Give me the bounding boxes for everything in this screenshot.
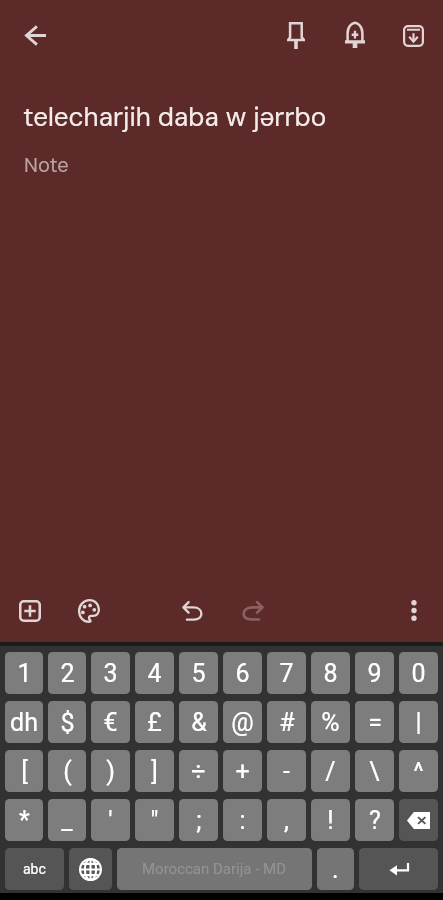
staticText: | — [415, 708, 422, 737]
button[interactable]: \ — [355, 750, 394, 792]
staticText: ' — [108, 806, 113, 835]
staticText: , — [284, 806, 289, 835]
staticText: 7 — [279, 659, 294, 688]
button[interactable]: Add — [7, 588, 53, 634]
button[interactable]: = — [355, 701, 394, 743]
staticText: ! — [327, 806, 334, 835]
staticText: ( — [63, 757, 72, 786]
staticText: ÷ — [191, 757, 206, 786]
staticText: * — [19, 806, 30, 835]
staticText: $ — [60, 708, 75, 737]
button[interactable]: ! — [311, 799, 350, 841]
staticText: 4 — [147, 659, 162, 688]
button[interactable]: Archive — [391, 13, 436, 59]
button[interactable]: £ — [135, 701, 174, 743]
button[interactable]: : — [223, 799, 262, 841]
staticText: 5 — [191, 659, 206, 688]
staticText: # — [279, 708, 295, 737]
button[interactable]: dh — [5, 701, 43, 743]
button[interactable]: 0 — [399, 652, 438, 694]
button[interactable]: Moroccan Darija - MD — [117, 848, 312, 890]
button[interactable]: + — [223, 750, 262, 792]
button[interactable]: ' — [91, 799, 130, 841]
button[interactable]: Enter — [359, 848, 438, 890]
button[interactable]: Reminder — [333, 10, 377, 60]
staticText: ] — [151, 757, 158, 786]
button[interactable]: @ — [223, 701, 262, 743]
button[interactable]: _ — [48, 799, 86, 841]
staticText: 1 — [17, 659, 32, 688]
staticText: _ — [61, 806, 73, 835]
button[interactable]: € — [91, 701, 130, 743]
staticText: 3 — [103, 659, 118, 688]
staticText: Moroccan Darija - MD — [142, 860, 287, 878]
button[interactable]: Back — [13, 13, 58, 58]
button[interactable]: ; — [179, 799, 218, 841]
button[interactable]: / — [311, 750, 350, 792]
staticText: 9 — [367, 659, 382, 688]
button[interactable]: ) — [91, 750, 130, 792]
staticText: 6 — [235, 659, 250, 688]
staticText: dh — [10, 708, 38, 737]
button[interactable]: - — [267, 750, 306, 792]
staticText: + — [235, 757, 250, 786]
button[interactable]: ^ — [399, 750, 438, 792]
staticText: - — [283, 757, 290, 786]
staticText: ; — [196, 806, 202, 835]
staticText: " — [150, 806, 159, 835]
button[interactable]: 1 — [5, 652, 43, 694]
button[interactable]: 6 — [223, 652, 262, 694]
button[interactable]: ÷ — [179, 750, 218, 792]
staticText: \ — [369, 757, 380, 786]
button[interactable]: # — [267, 701, 306, 743]
button[interactable]: & — [179, 701, 218, 743]
staticText: = — [368, 708, 382, 737]
button[interactable]: 5 — [179, 652, 218, 694]
button[interactable]: $ — [48, 701, 86, 743]
staticText: £ — [147, 708, 162, 737]
button[interactable]: Undo — [170, 588, 214, 633]
button[interactable]: ? — [355, 799, 394, 841]
staticText: ) — [106, 757, 115, 786]
button[interactable]: Change language — [69, 848, 112, 890]
button[interactable]: abc — [5, 848, 64, 890]
staticText: . — [332, 855, 339, 884]
staticText: % — [321, 708, 340, 737]
staticText: ^ — [413, 757, 424, 786]
button[interactable]: [ — [5, 750, 43, 792]
button[interactable]: % — [311, 701, 350, 743]
button[interactable]: 7 — [267, 652, 306, 694]
button[interactable]: , — [267, 799, 306, 841]
button[interactable]: More options — [397, 588, 431, 633]
button[interactable]: ( — [48, 750, 86, 792]
staticText: 2 — [60, 659, 75, 688]
button[interactable]: 3 — [91, 652, 130, 694]
button[interactable]: Pin note — [275, 10, 317, 61]
button[interactable]: * — [5, 799, 43, 841]
staticText: / — [325, 757, 336, 786]
staticText: Note — [24, 152, 69, 178]
staticText: 0 — [411, 659, 426, 688]
staticText: : — [239, 806, 246, 835]
button[interactable]: Colour and background — [66, 587, 112, 635]
staticText: 8 — [323, 659, 338, 688]
button[interactable]: 4 — [135, 652, 174, 694]
button[interactable]: . — [317, 848, 354, 890]
button[interactable]: | — [399, 701, 438, 743]
button[interactable]: " — [135, 799, 174, 841]
button[interactable]: Backspace — [399, 799, 438, 841]
staticText: ? — [369, 806, 381, 835]
button[interactable]: ] — [135, 750, 174, 792]
button[interactable]: 9 — [355, 652, 394, 694]
staticText: € — [103, 708, 118, 737]
staticText: @ — [231, 708, 254, 737]
button[interactable]: Redo — [231, 588, 276, 633]
staticText: telecharjih daba w jərrbo — [23, 100, 327, 134]
staticText: [ — [21, 757, 28, 786]
button[interactable]: 2 — [48, 652, 86, 694]
staticText: & — [191, 708, 207, 737]
staticText: abc — [23, 861, 46, 877]
button[interactable]: 8 — [311, 652, 350, 694]
